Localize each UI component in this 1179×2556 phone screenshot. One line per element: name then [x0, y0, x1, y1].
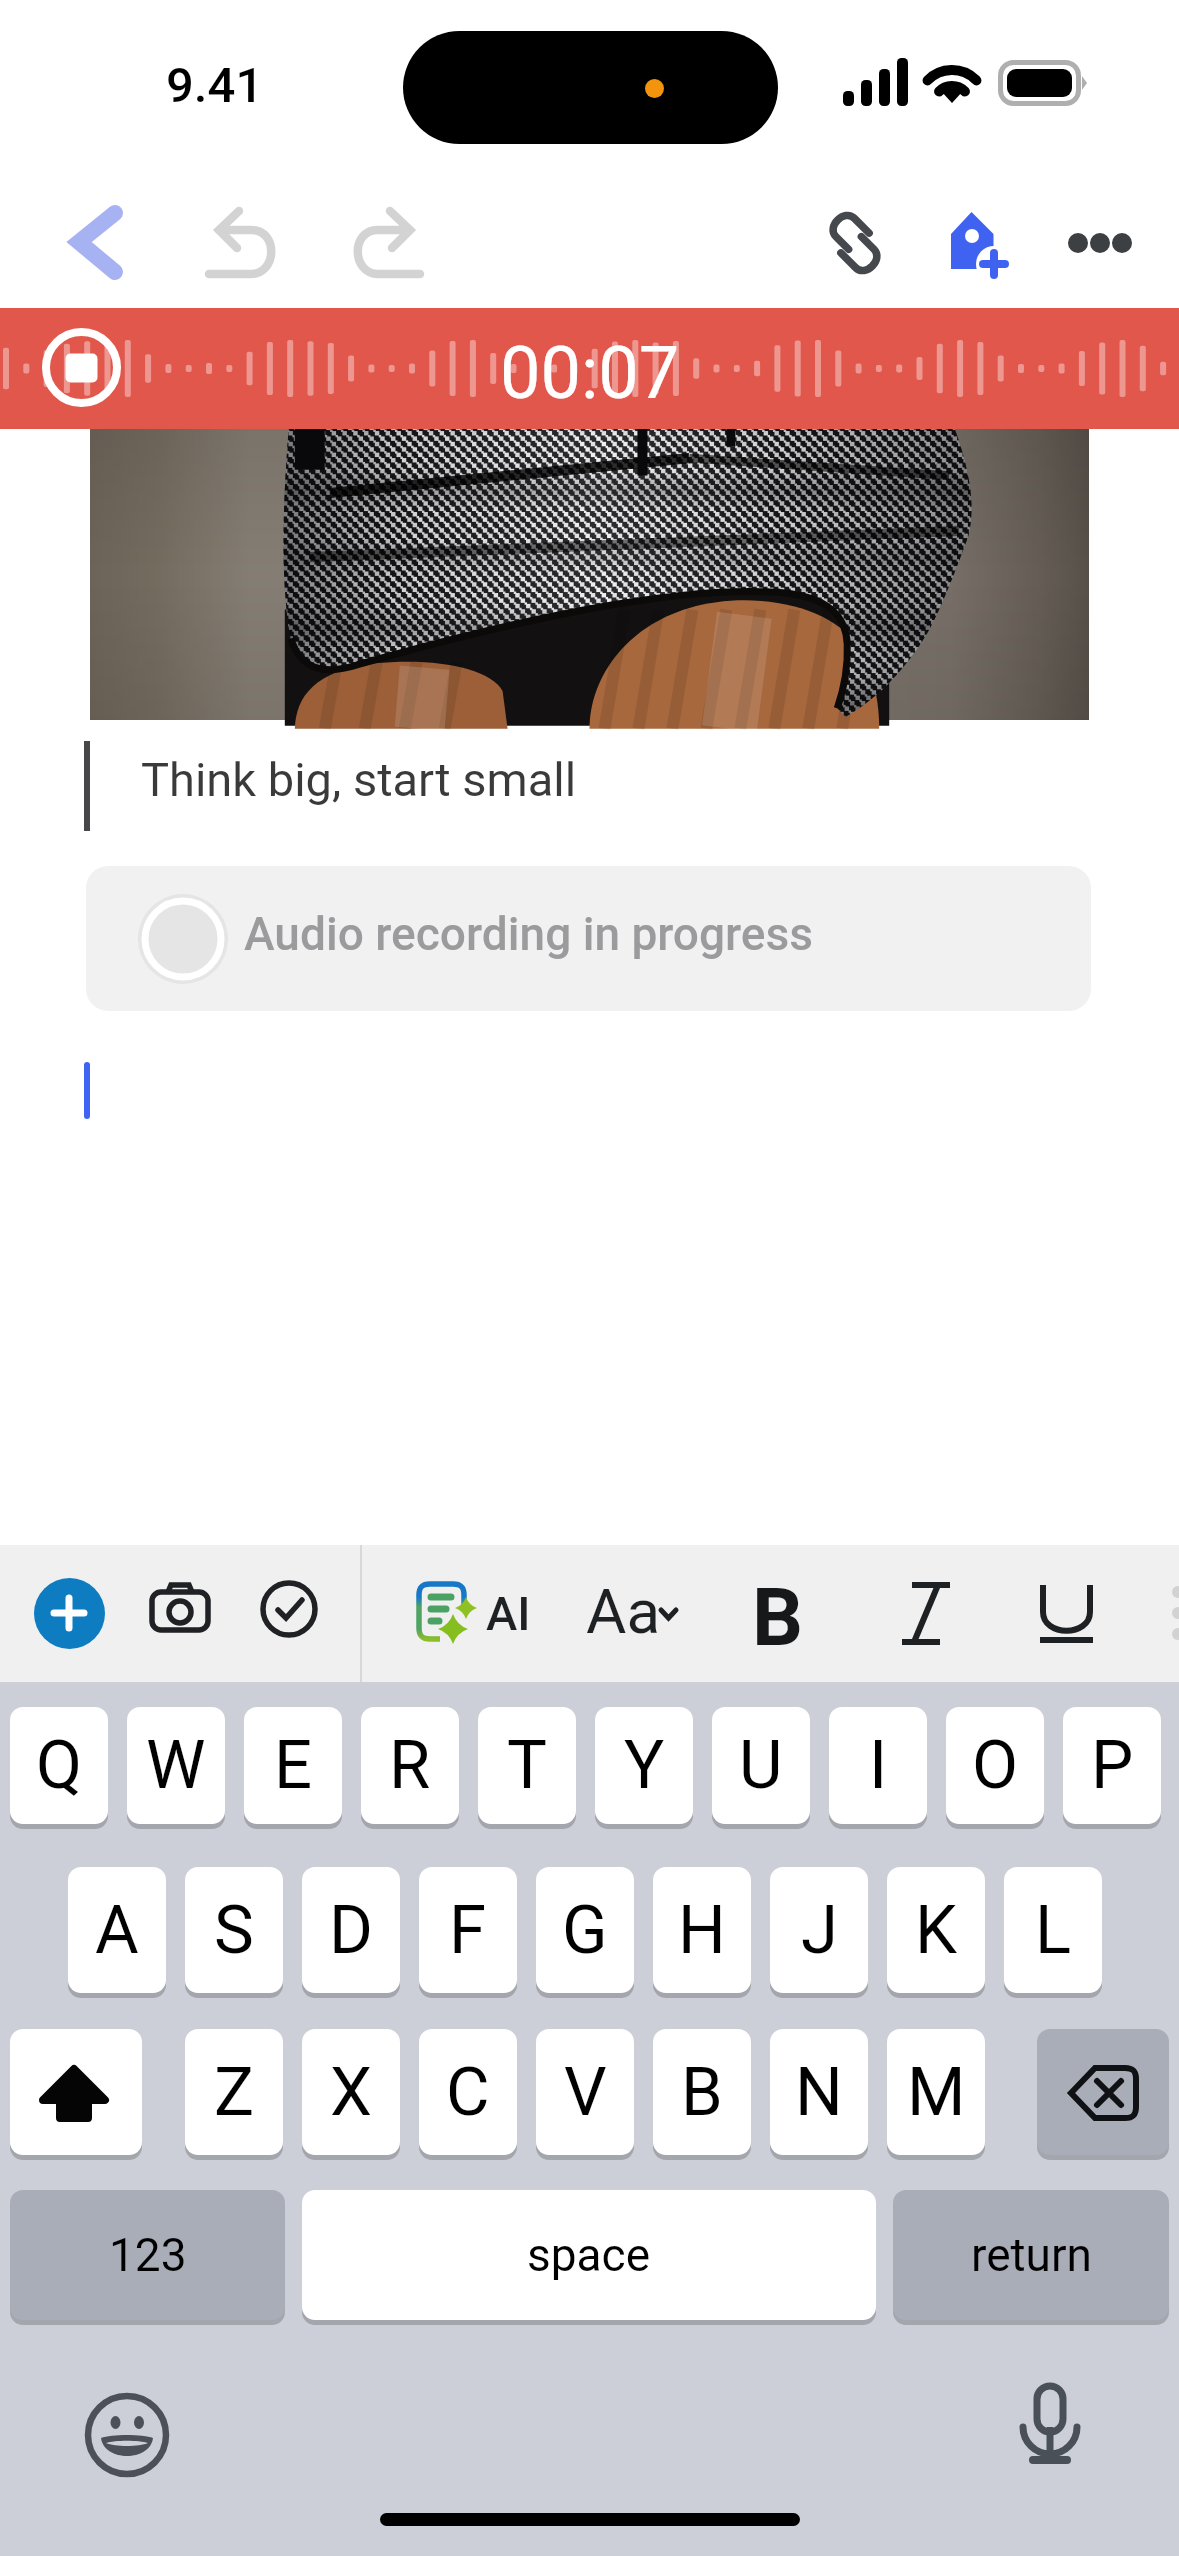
button[interactable]: Dictate: [1008, 2380, 1096, 2468]
staticText: R: [389, 1726, 431, 1805]
staticText: B: [752, 1571, 804, 1657]
button[interactable]: V: [536, 2029, 634, 2155]
button[interactable]: R: [361, 1707, 459, 1824]
staticText: B: [681, 2053, 723, 2132]
staticText: Y: [624, 1726, 665, 1805]
staticText: C: [446, 2053, 490, 2132]
button[interactable]: Back: [45, 192, 149, 296]
button[interactable]: Add attachment: [34, 1578, 105, 1649]
button[interactable]: Underline: [1020, 1569, 1110, 1655]
button[interactable]: J: [770, 1867, 868, 1993]
staticText: return: [971, 2228, 1092, 2282]
button[interactable]: W: [127, 1707, 225, 1824]
button[interactable]: T: [478, 1707, 576, 1824]
button[interactable]: Numbers: [10, 2190, 285, 2320]
button[interactable]: Checklist: [263, 1583, 321, 1641]
button[interactable]: AI assist: [410, 1575, 540, 1655]
button[interactable]: I: [829, 1707, 927, 1824]
button[interactable]: More options: [1050, 193, 1150, 293]
button[interactable]: L: [1004, 1867, 1102, 1993]
staticText: F: [449, 1891, 487, 1970]
button[interactable]: M: [887, 2029, 985, 2155]
staticText: O: [972, 1726, 1019, 1805]
staticText: 9.41: [166, 57, 264, 114]
button[interactable]: S: [185, 1867, 283, 1993]
button[interactable]: Return: [893, 2190, 1169, 2320]
button[interactable]: Stop recording: [0, 308, 1179, 429]
button[interactable]: A: [68, 1867, 166, 1993]
staticText: Z: [214, 2053, 255, 2132]
button[interactable]: H: [653, 1867, 751, 1993]
button[interactable]: F: [419, 1867, 517, 1993]
staticText: N: [795, 2053, 843, 2132]
staticText: K: [915, 1891, 958, 1970]
button[interactable]: Undo: [199, 192, 299, 292]
button[interactable]: Redo: [330, 192, 430, 292]
button[interactable]: E: [244, 1707, 342, 1824]
button[interactable]: D: [302, 1867, 400, 1993]
staticText: E: [274, 1726, 313, 1805]
staticText: D: [329, 1891, 373, 1970]
staticText: 123: [109, 2228, 187, 2282]
button[interactable]: K: [887, 1867, 985, 1993]
staticText: J: [801, 1891, 838, 1970]
staticText: I: [869, 1726, 888, 1805]
staticText: AI: [486, 1586, 531, 1641]
button[interactable]: U: [712, 1707, 810, 1824]
staticText: A: [95, 1891, 139, 1970]
staticText: Aa: [586, 1575, 661, 1648]
button[interactable]: Text style: [586, 1571, 686, 1655]
button[interactable]: Bold: [744, 1569, 814, 1655]
button[interactable]: Space: [302, 2190, 876, 2320]
staticText: L: [1035, 1891, 1072, 1970]
button[interactable]: Backspace: [1037, 2029, 1169, 2155]
staticText: V: [564, 2053, 607, 2132]
staticText: Q: [36, 1726, 83, 1805]
button[interactable]: G: [536, 1867, 634, 1993]
button[interactable]: O: [946, 1707, 1044, 1824]
button[interactable]: Italic: [876, 1569, 966, 1655]
button[interactable]: P: [1063, 1707, 1161, 1824]
button[interactable]: Shift: [10, 2029, 142, 2155]
staticText: Think big, start small: [141, 752, 577, 807]
staticText: U: [739, 1726, 783, 1805]
button[interactable]: B: [653, 2029, 751, 2155]
button[interactable]: Add tag: [925, 193, 1025, 293]
button[interactable]: Q: [10, 1707, 108, 1824]
staticText: Audio recording in progress: [244, 907, 813, 961]
button[interactable]: Insert link: [805, 193, 905, 293]
staticText: space: [527, 2228, 651, 2282]
staticText: S: [214, 1891, 254, 1970]
staticText: W: [146, 1726, 206, 1805]
staticText: H: [678, 1891, 726, 1970]
staticText: 00:07: [500, 331, 680, 415]
button[interactable]: X: [302, 2029, 400, 2155]
staticText: M: [907, 2053, 966, 2132]
staticText: G: [562, 1891, 608, 1970]
button[interactable]: Y: [595, 1707, 693, 1824]
staticText: X: [330, 2053, 373, 2132]
button[interactable]: Stop recording: [42, 328, 121, 407]
button[interactable]: N: [770, 2029, 868, 2155]
button[interactable]: Audio recording in progress: [86, 866, 1091, 1011]
button[interactable]: Camera: [148, 1577, 218, 1647]
button[interactable]: Z: [185, 2029, 283, 2155]
button[interactable]: Emoji: [85, 2392, 170, 2477]
staticText: T: [507, 1726, 547, 1805]
button[interactable]: C: [419, 2029, 517, 2155]
staticText: P: [1091, 1726, 1134, 1805]
